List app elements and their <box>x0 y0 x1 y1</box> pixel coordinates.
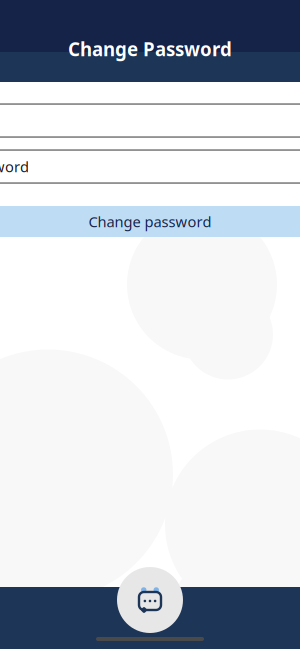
button[interactable]: Change password <box>0 206 300 237</box>
button[interactable]: Chat <box>117 567 183 633</box>
staticText: Change password <box>88 212 211 231</box>
staticText: Change Password <box>68 37 232 61</box>
staticText: Confirm New Password <box>0 157 29 176</box>
